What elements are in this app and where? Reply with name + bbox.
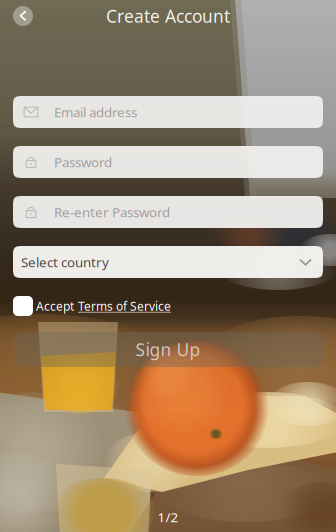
staticText: Terms of Service xyxy=(78,298,171,314)
button[interactable]: Back xyxy=(8,1,38,31)
staticText: Re-enter Password xyxy=(54,203,170,221)
staticText: Password xyxy=(54,153,112,171)
staticText: 1/2 xyxy=(157,508,178,526)
staticText: Create Account xyxy=(106,4,230,27)
staticText: Accept xyxy=(36,298,74,314)
button[interactable]: Terms of Service xyxy=(74,298,171,314)
staticText: Select country xyxy=(21,253,109,271)
button[interactable]: Accept terms xyxy=(13,296,33,316)
staticText: Email address xyxy=(54,103,137,121)
button[interactable]: Re-enter Password xyxy=(13,196,323,228)
button[interactable]: Select country xyxy=(13,246,323,278)
staticText: Sign Up xyxy=(135,338,200,361)
button[interactable]: Sign Up xyxy=(13,332,323,367)
button[interactable]: Email address xyxy=(13,96,323,128)
button[interactable]: Password xyxy=(13,146,323,178)
